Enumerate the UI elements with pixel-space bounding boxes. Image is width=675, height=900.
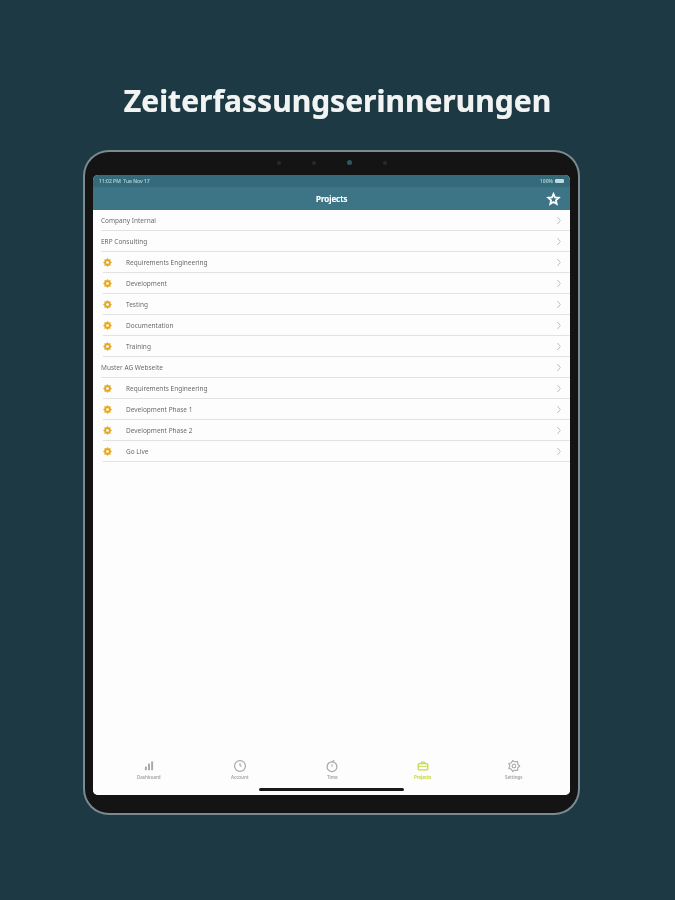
- staticText: Development: [126, 279, 167, 288]
- staticText: 100%: [540, 178, 553, 185]
- staticText: Requirements Engineering: [126, 258, 208, 267]
- staticText: Zeiterfassungserinnerungen: [0, 80, 675, 121]
- button[interactable]: ERP Consulting: [93, 231, 570, 251]
- button[interactable]: Dashboard: [114, 755, 184, 785]
- button[interactable]: Documentation: [93, 315, 570, 335]
- staticText: Settings: [505, 774, 523, 780]
- button[interactable]: Settings: [479, 755, 549, 785]
- button[interactable]: Time: [297, 755, 367, 785]
- staticText: ERP Consulting: [101, 237, 148, 246]
- staticText: Time: [327, 774, 338, 780]
- button[interactable]: Development: [93, 273, 570, 293]
- staticText: Dashboard: [137, 774, 161, 780]
- staticText: Testing: [126, 300, 148, 309]
- button[interactable]: Muster AG Webseite: [93, 357, 570, 377]
- staticText: Projects: [316, 193, 348, 204]
- button[interactable]: Training: [93, 336, 570, 356]
- button[interactable]: Projects: [388, 755, 458, 785]
- button[interactable]: Favorites: [544, 190, 562, 208]
- staticText: Development Phase 2: [126, 426, 193, 435]
- staticText: Go Live: [126, 447, 149, 456]
- staticText: Company Internal: [101, 216, 157, 225]
- staticText: Muster AG Webseite: [101, 363, 163, 372]
- button[interactable]: Requirements Engineering: [93, 252, 570, 272]
- staticText: 11:02 PM Tue Nov 17: [99, 178, 150, 185]
- button[interactable]: Requirements Engineering: [93, 378, 570, 398]
- button[interactable]: Testing: [93, 294, 570, 314]
- staticText: Requirements Engineering: [126, 384, 208, 393]
- button[interactable]: Development Phase 1: [93, 399, 570, 419]
- button[interactable]: Account: [205, 755, 275, 785]
- button[interactable]: Company Internal: [93, 210, 570, 230]
- staticText: Account: [231, 774, 249, 780]
- staticText: Documentation: [126, 321, 174, 330]
- staticText: Development Phase 1: [126, 405, 193, 414]
- staticText: Projects: [414, 774, 432, 780]
- button[interactable]: Development Phase 2: [93, 420, 570, 440]
- button[interactable]: Go Live: [93, 441, 570, 461]
- staticText: Training: [126, 342, 151, 351]
